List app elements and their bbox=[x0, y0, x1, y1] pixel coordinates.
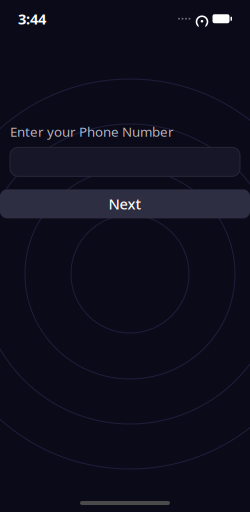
staticText: Enter your Phone Number bbox=[10, 123, 174, 140]
button[interactable]: Next bbox=[0, 189, 250, 218]
staticText: 3:44 bbox=[18, 9, 46, 28]
staticText: Next bbox=[108, 194, 141, 214]
